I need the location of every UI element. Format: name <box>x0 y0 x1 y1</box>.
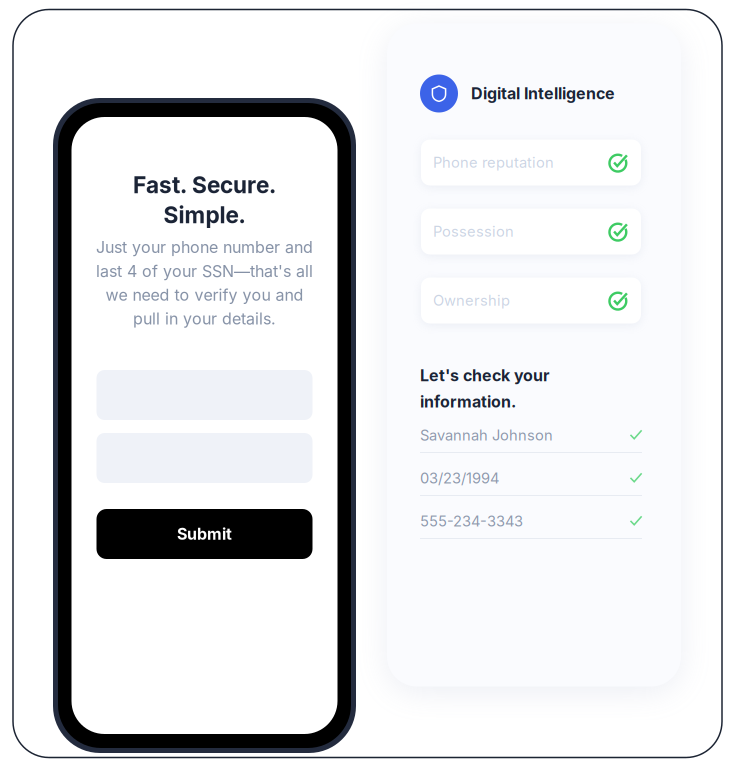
staticText: Phone reputation <box>433 154 554 171</box>
staticText: Possession <box>433 223 514 240</box>
button[interactable]: 555-234-3343 <box>420 496 642 539</box>
staticText: pull in your details. <box>133 309 276 328</box>
staticText: 03/23/1994 <box>420 469 499 487</box>
button[interactable]: Phone reputation <box>421 139 641 185</box>
staticText: Ownership <box>433 292 510 309</box>
staticText: last 4 of your SSN—that's all <box>96 261 313 281</box>
button[interactable]: Ownership <box>421 277 641 323</box>
staticText: we need to verify you and <box>105 285 303 305</box>
staticText: Digital Intelligence <box>471 84 615 103</box>
staticText: information. <box>420 392 516 411</box>
staticText: Let's check your <box>420 366 550 385</box>
button[interactable]: Savannah Johnson <box>420 410 642 453</box>
button[interactable]: Submit <box>96 509 312 559</box>
staticText: Fast. Secure. <box>133 171 276 199</box>
staticText: 555-234-3343 <box>420 512 523 530</box>
staticText: Submit <box>177 524 232 544</box>
button[interactable]: 03/23/1994 <box>420 453 642 496</box>
staticText: Savannah Johnson <box>420 426 553 444</box>
button[interactable]: Possession <box>421 208 641 254</box>
staticText: Simple. <box>163 201 245 229</box>
staticText: Just your phone number and <box>96 237 313 257</box>
